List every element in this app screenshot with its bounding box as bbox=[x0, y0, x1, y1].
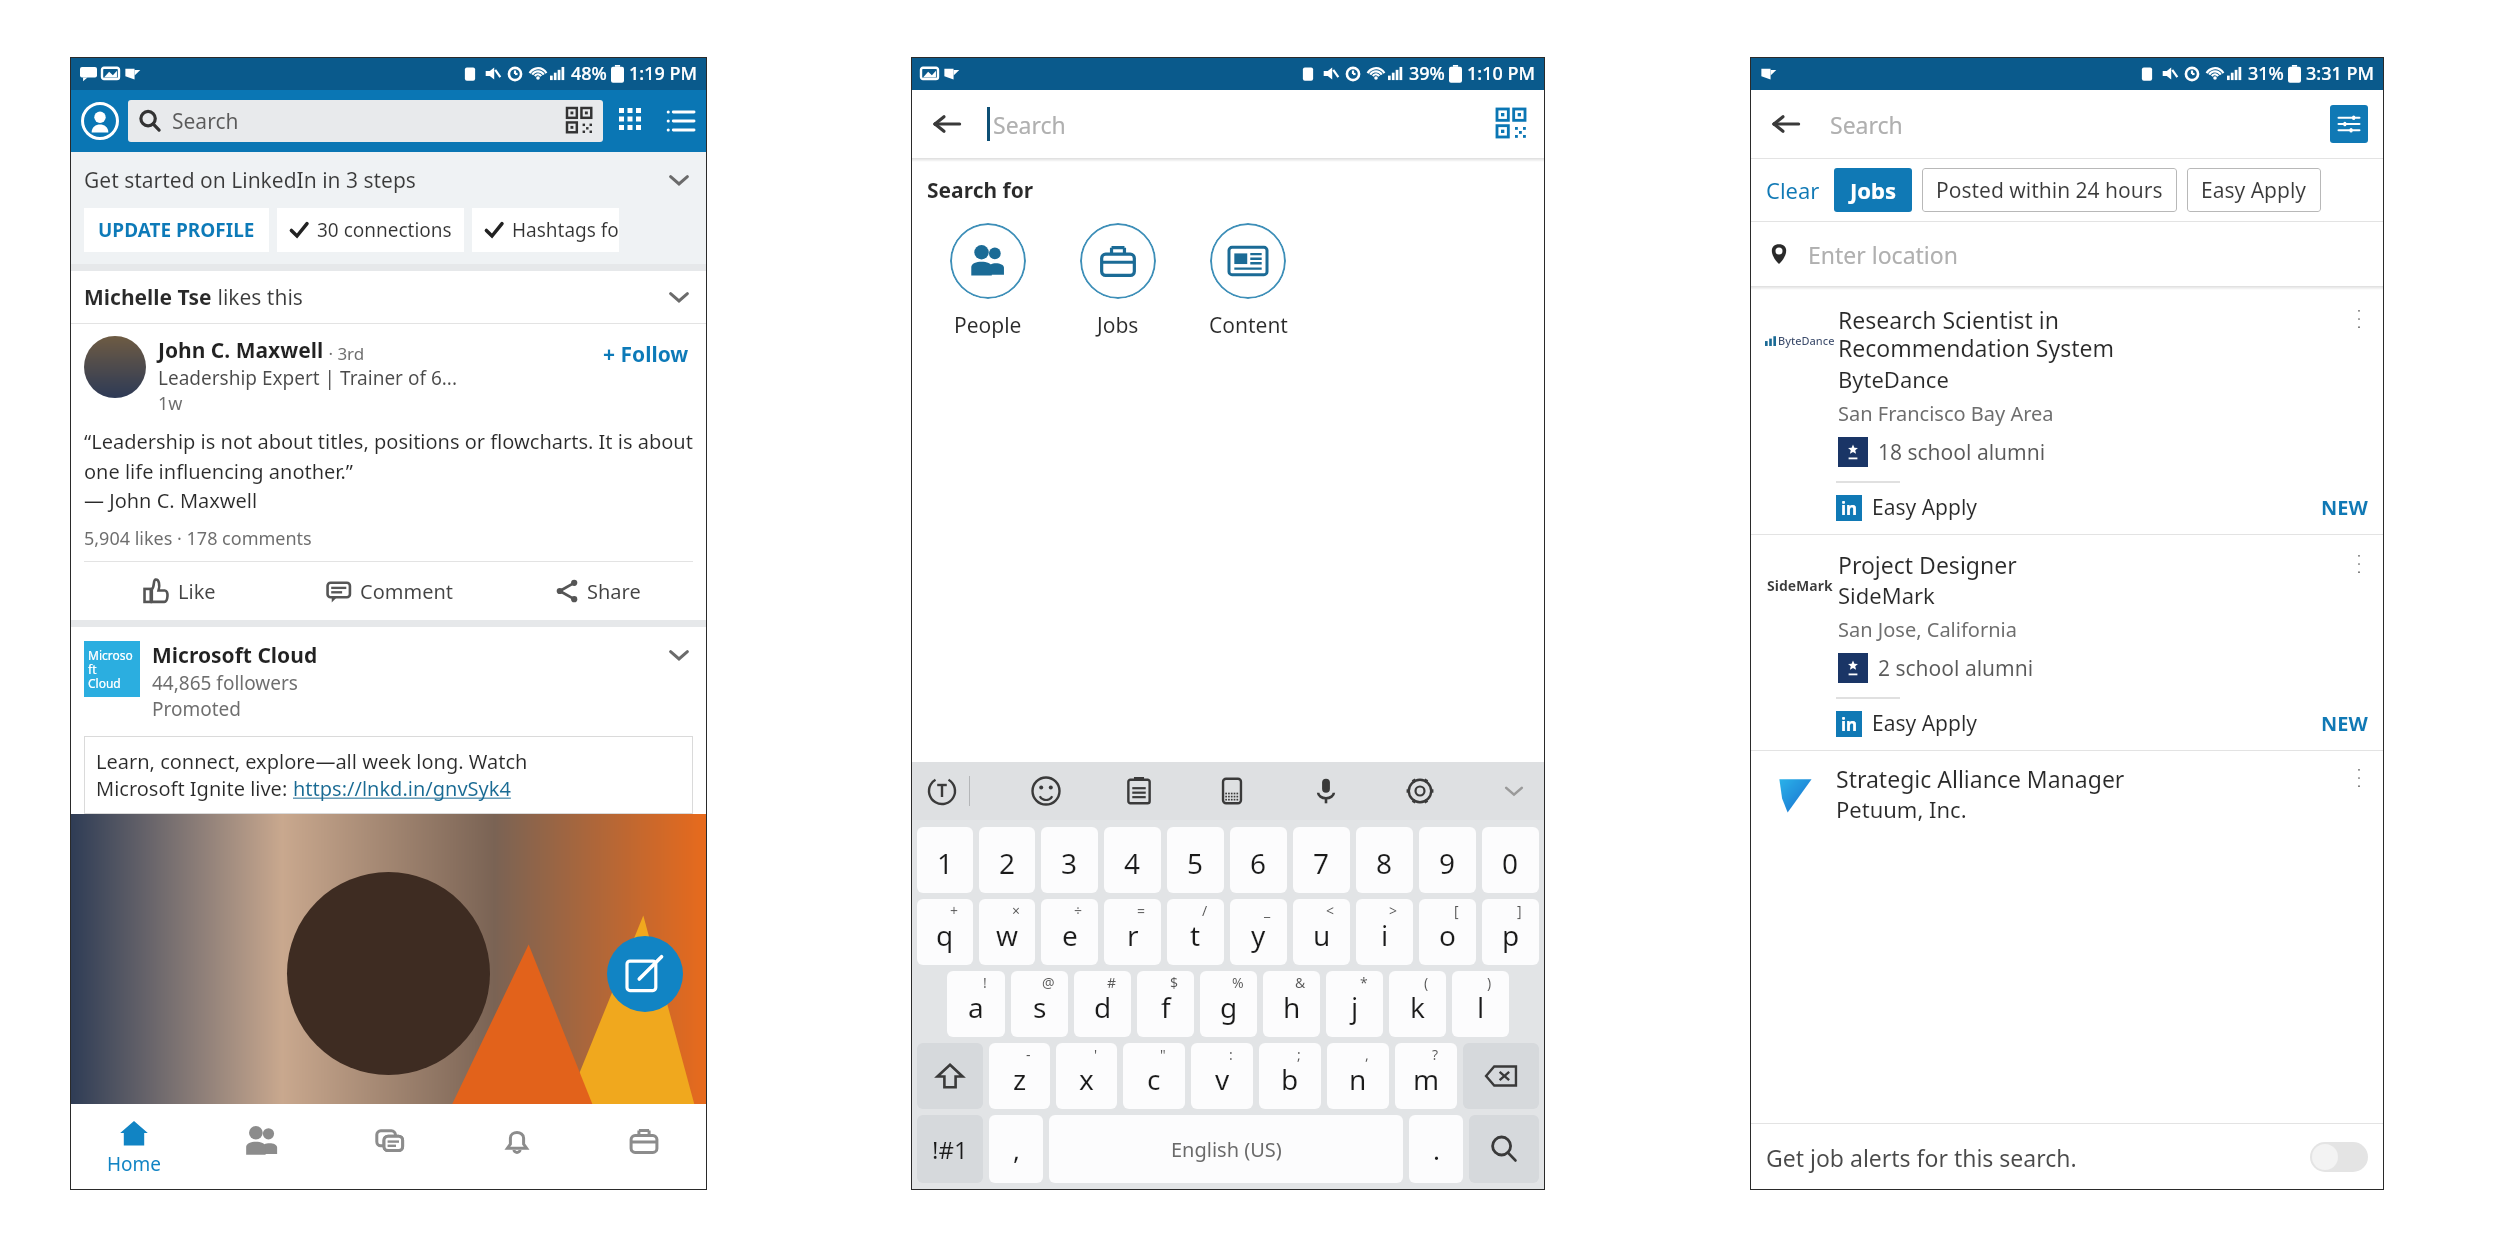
button[interactable]: a bbox=[947, 971, 1005, 1037]
staticText: 2 school alumni bbox=[1878, 654, 2034, 683]
button[interactable]: x bbox=[1056, 1043, 1117, 1109]
button[interactable]: Backspace bbox=[1463, 1043, 1539, 1109]
button[interactable]: j bbox=[1326, 971, 1383, 1037]
button[interactable]: Back bbox=[927, 104, 967, 144]
button[interactable]: 7 bbox=[1293, 827, 1350, 893]
button[interactable]: 30 connections bbox=[277, 208, 464, 252]
button[interactable]: Posted within 24 hours bbox=[1922, 168, 2177, 212]
button[interactable]: 9 bbox=[1419, 827, 1476, 893]
button[interactable]: 2 bbox=[979, 827, 1035, 893]
button[interactable]: m bbox=[1395, 1043, 1457, 1109]
button[interactable]: Get started on LinkedIn in 3 steps bbox=[70, 152, 707, 208]
button[interactable]: Easy Apply bbox=[2187, 168, 2321, 212]
button[interactable]: Search bbox=[1469, 1115, 1539, 1183]
button[interactable]: b bbox=[1259, 1043, 1321, 1109]
button[interactable]: Profile bbox=[80, 101, 120, 141]
button[interactable]: 3 bbox=[1041, 827, 1098, 893]
staticText: Learn, connect, explore—all week long. W… bbox=[96, 748, 528, 775]
button[interactable]: Scan QR code bbox=[1495, 107, 1529, 141]
button[interactable]: Clear bbox=[1762, 175, 1824, 205]
button[interactable]: !#1 bbox=[917, 1115, 983, 1183]
staticText: d bbox=[1094, 988, 1112, 1026]
button[interactable]: g bbox=[1200, 971, 1257, 1037]
button[interactable]: Shift bbox=[917, 1043, 983, 1109]
button[interactable]: n bbox=[1327, 1043, 1389, 1109]
button[interactable]: UPDATE PROFILE bbox=[84, 208, 269, 252]
button[interactable]: f bbox=[1137, 971, 1194, 1037]
button[interactable]: Get job alerts for this search. bbox=[1750, 1124, 2384, 1190]
button[interactable]: Notifications bbox=[453, 1104, 580, 1190]
button[interactable]: Like bbox=[84, 562, 275, 620]
staticText: + bbox=[950, 901, 959, 920]
button[interactable]: More options bbox=[2344, 549, 2374, 579]
button[interactable]: Jobs bbox=[1834, 168, 1912, 212]
button[interactable]: List bbox=[663, 104, 697, 138]
button[interactable]: r bbox=[1104, 899, 1161, 965]
button[interactable]: p bbox=[1482, 899, 1539, 965]
button[interactable]: Michelle Tse bbox=[70, 271, 707, 323]
button[interactable]: Hashtags fo bbox=[472, 208, 619, 252]
button[interactable]: s bbox=[1011, 971, 1068, 1037]
button[interactable]: Home bbox=[70, 1104, 198, 1190]
button[interactable]: Messaging bbox=[326, 1104, 453, 1190]
button[interactable]: Filters bbox=[2330, 105, 2368, 143]
staticText: San Jose, California bbox=[1838, 616, 2017, 643]
button[interactable]: Enter location bbox=[1750, 222, 2384, 286]
button[interactable]: Hide keyboard bbox=[1497, 774, 1531, 808]
button[interactable]: Jobs bbox=[580, 1104, 707, 1190]
button[interactable]: Search bbox=[128, 100, 603, 142]
button[interactable]: u bbox=[1293, 899, 1350, 965]
button[interactable]: . bbox=[1409, 1115, 1463, 1183]
button[interactable]: z bbox=[989, 1043, 1050, 1109]
button[interactable]: 1 bbox=[917, 827, 973, 893]
button[interactable]: q bbox=[917, 899, 973, 965]
button[interactable]: Apps bbox=[615, 104, 649, 138]
button[interactable]: Keyboard settings bbox=[1403, 774, 1437, 808]
staticText: 30 connections bbox=[317, 217, 452, 243]
staticText: y bbox=[1251, 916, 1266, 954]
button[interactable]: 8 bbox=[1356, 827, 1413, 893]
staticText: 4 bbox=[1124, 844, 1141, 882]
button[interactable]: t bbox=[1167, 899, 1224, 965]
button[interactable]: 6 bbox=[1230, 827, 1287, 893]
staticText: 48% bbox=[571, 61, 607, 86]
button[interactable]: v bbox=[1191, 1043, 1253, 1109]
button[interactable]: 4 bbox=[1104, 827, 1161, 893]
button[interactable]: y bbox=[1230, 899, 1287, 965]
button[interactable]: o bbox=[1419, 899, 1476, 965]
button[interactable]: ByteDance bbox=[1750, 290, 2384, 535]
button[interactable]: Share bbox=[503, 562, 693, 620]
button[interactable]: c bbox=[1123, 1043, 1185, 1109]
button[interactable]: More options bbox=[2344, 304, 2374, 334]
button[interactable]: One-handed keyboard bbox=[1215, 774, 1249, 808]
button[interactable]: k bbox=[1389, 971, 1446, 1037]
button[interactable]: Strategic Alliance Manager bbox=[1750, 751, 2384, 1123]
button[interactable]: + Follow bbox=[599, 336, 693, 373]
button[interactable]: English (US) bbox=[1049, 1115, 1403, 1183]
button[interactable]: My Network bbox=[198, 1104, 326, 1190]
button[interactable]: Write a post bbox=[607, 936, 683, 1012]
button[interactable]: Emoji bbox=[1029, 774, 1063, 808]
button[interactable]: People bbox=[929, 223, 1047, 340]
button[interactable]: More options bbox=[2344, 763, 2374, 793]
button[interactable]: Comment bbox=[275, 562, 503, 620]
button[interactable]: d bbox=[1074, 971, 1131, 1037]
button[interactable]: Voice input bbox=[1309, 774, 1343, 808]
button[interactable]: Translate bbox=[925, 774, 959, 808]
button[interactable]: 5 bbox=[1167, 827, 1224, 893]
button[interactable]: l bbox=[1452, 971, 1509, 1037]
staticText: @ bbox=[1042, 973, 1055, 992]
button[interactable]: Jobs bbox=[1059, 223, 1177, 340]
staticText: Microsoft Cloud bbox=[88, 647, 136, 692]
button[interactable]: e bbox=[1041, 899, 1098, 965]
button[interactable]: w bbox=[979, 899, 1035, 965]
button[interactable]: 0 bbox=[1482, 827, 1539, 893]
staticText: l bbox=[1477, 988, 1485, 1026]
button[interactable]: , bbox=[989, 1115, 1043, 1183]
button[interactable]: Content bbox=[1189, 223, 1307, 340]
button[interactable]: Clipboard bbox=[1122, 774, 1156, 808]
button[interactable]: Back bbox=[1766, 104, 1806, 144]
button[interactable]: h bbox=[1263, 971, 1320, 1037]
button[interactable]: i bbox=[1356, 899, 1413, 965]
button[interactable]: SideMark bbox=[1750, 535, 2384, 751]
